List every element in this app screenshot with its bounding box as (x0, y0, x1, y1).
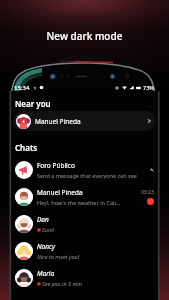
staticText: Nancy (37, 242, 56, 251)
button[interactable]: Dan (10, 210, 159, 237)
staticText: See you in 5 min (42, 280, 82, 287)
staticText: Nice to meet you! (37, 253, 80, 260)
staticText: 03:23 (141, 189, 154, 196)
staticText: Sure! (42, 226, 55, 233)
other: Open chat (146, 118, 152, 124)
staticText: Dan (37, 215, 49, 224)
staticText: New dark mode (0, 29, 169, 43)
staticText: Foro Público (37, 161, 75, 170)
staticText: 73% (143, 84, 154, 91)
staticText: Hey!, how's the weather in Cali... (37, 199, 121, 206)
staticText: Near you (15, 98, 51, 109)
staticText: Maria (37, 269, 55, 278)
button[interactable]: Manuel Pineda (13, 111, 156, 131)
staticText: Send a message that everyone can see (37, 172, 137, 179)
button[interactable]: Maria (10, 264, 159, 291)
staticText: Manuel Pineda (35, 117, 81, 126)
button[interactable]: Manuel Pineda (10, 183, 159, 210)
button[interactable]: Nancy (10, 237, 159, 264)
button[interactable]: Foro Público (10, 156, 159, 183)
staticText: 15:34 (14, 84, 30, 92)
staticText: Manuel Pineda (37, 188, 83, 197)
staticText: Chats (15, 142, 38, 153)
